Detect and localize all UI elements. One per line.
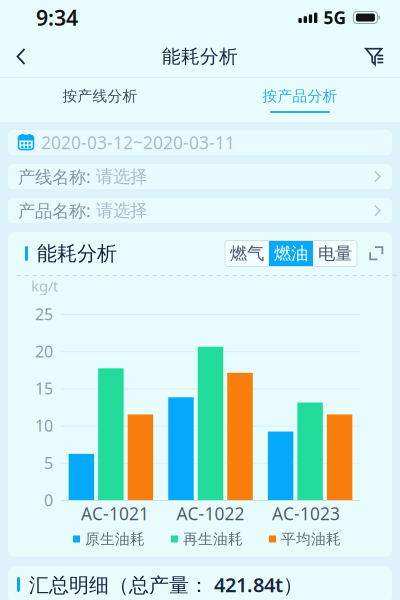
staticText: 0 xyxy=(44,489,53,511)
staticText: 原生油耗 xyxy=(85,530,145,548)
staticText: AC-1022 xyxy=(176,502,244,525)
staticText: 再生油耗 xyxy=(183,530,243,548)
button[interactable]: 燃油 xyxy=(269,240,313,266)
staticText: 燃气 xyxy=(230,243,264,264)
staticText: 请选择 xyxy=(96,166,147,187)
staticText: 5G xyxy=(323,6,346,29)
button[interactable]: 按产品分析 xyxy=(200,78,400,122)
button[interactable]: 2020-03-12~2020-03-11 xyxy=(8,130,392,155)
staticText: AC-1023 xyxy=(272,502,340,525)
button[interactable]: Back xyxy=(0,35,40,78)
staticText: 10 xyxy=(35,415,53,436)
staticText: 燃油 xyxy=(274,243,308,264)
button[interactable]: Filter xyxy=(351,35,400,78)
staticText: 15 xyxy=(35,378,53,399)
button[interactable]: 按产线分析 xyxy=(0,78,200,122)
button[interactable]: Fullscreen xyxy=(357,246,384,261)
staticText: 2020-03-12~2020-03-11 xyxy=(41,131,235,154)
staticText: 汇总明细（总产量： 421.84t） xyxy=(29,571,303,598)
button[interactable]: 燃气 xyxy=(225,240,269,266)
staticText: 20 xyxy=(35,341,53,362)
staticText: 按产品分析 xyxy=(262,87,337,105)
staticText: 25 xyxy=(35,303,53,325)
button[interactable]: 产线名称: xyxy=(8,164,392,189)
button[interactable]: 电量 xyxy=(313,240,357,266)
staticText: 产品名称: xyxy=(18,199,96,222)
staticText: 电量 xyxy=(318,243,352,264)
staticText: 能耗分析 xyxy=(37,241,117,266)
staticText: 按产线分析 xyxy=(62,87,137,105)
staticText: 能耗分析 xyxy=(162,45,238,68)
staticText: 请选择 xyxy=(96,200,147,221)
staticText: 5 xyxy=(44,452,53,473)
staticText: 9:34 xyxy=(36,3,78,32)
staticText: 产线名称: xyxy=(18,165,96,188)
staticText: kg/t xyxy=(31,276,58,295)
staticText: 平均油耗 xyxy=(281,530,341,548)
staticText: AC-1021 xyxy=(81,502,149,525)
button[interactable]: 产品名称: xyxy=(8,198,392,223)
